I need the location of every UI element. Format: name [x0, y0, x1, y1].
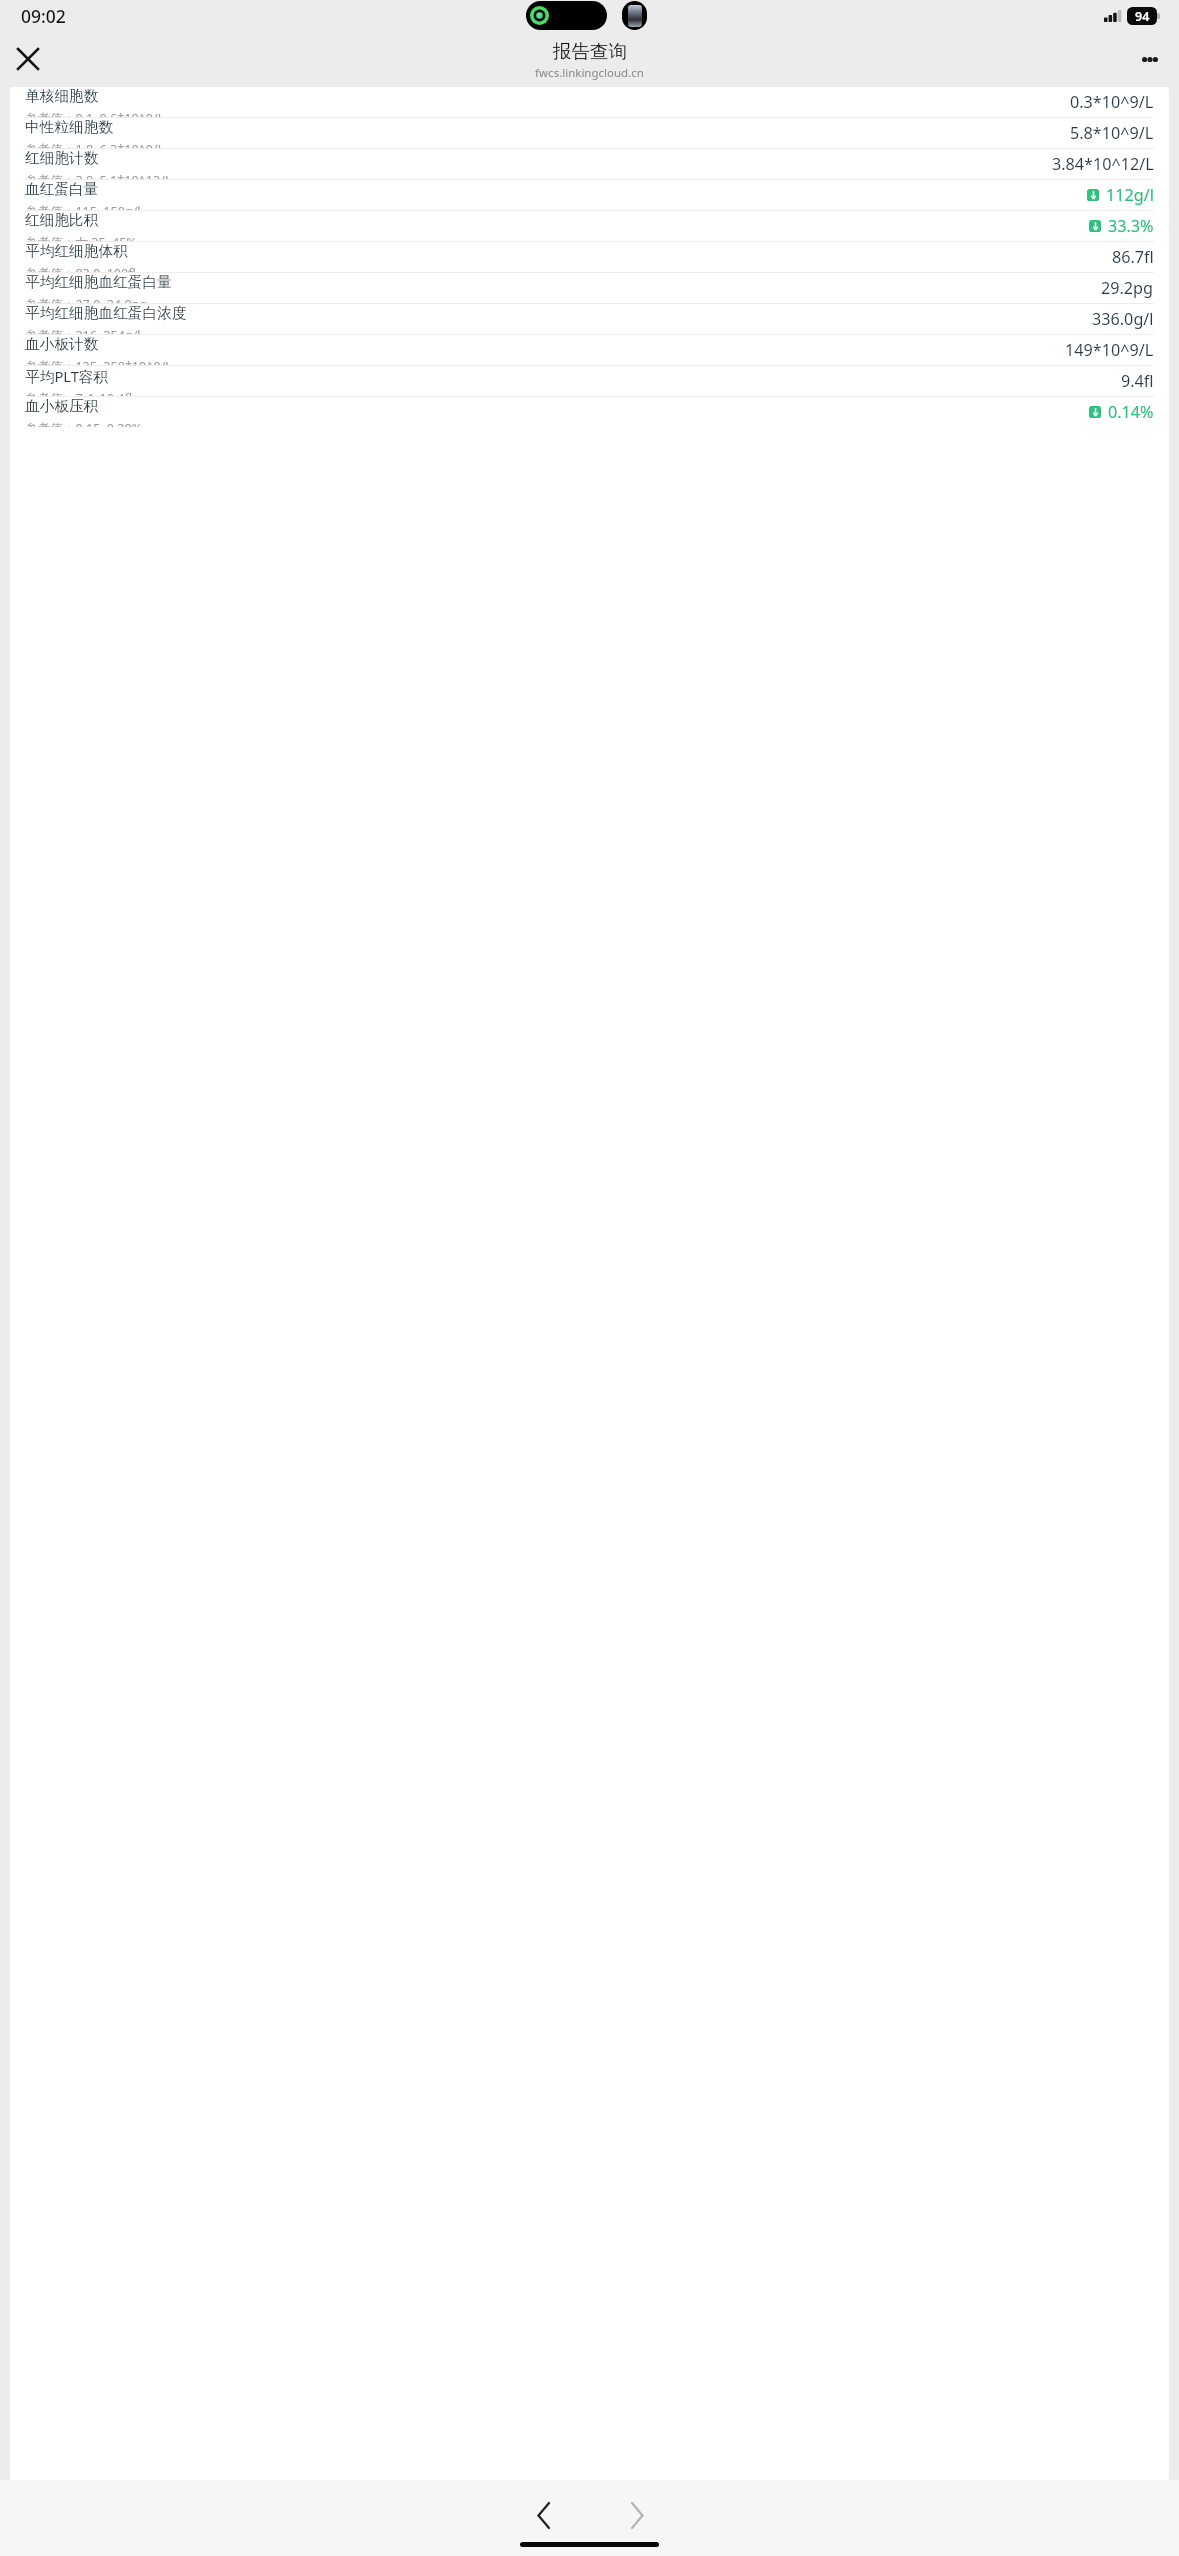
button[interactable]: 红细胞比积 — [10, 211, 1169, 241]
staticText: 86.7fl — [1112, 246, 1154, 268]
button[interactable]: Forward — [610, 2488, 664, 2542]
staticText: 94 — [1135, 8, 1150, 25]
staticText: 平均红细胞体积 — [25, 242, 128, 261]
button[interactable]: 血小板计数 — [10, 335, 1169, 365]
button[interactable]: 红细胞计数 — [10, 149, 1169, 179]
staticText: 9.4fl — [1121, 370, 1154, 392]
staticText: 336.0g/l — [1092, 308, 1154, 330]
button[interactable]: 血小板压积 — [10, 397, 1169, 427]
staticText: 参考值：115–150g/l — [25, 203, 141, 210]
staticText: 3.84*10^12/L — [1052, 153, 1154, 175]
staticText: 平均红细胞血红蛋白浓度 — [25, 304, 187, 323]
staticText: 参考值：0.15–0.30% — [25, 420, 143, 427]
button[interactable]: Close — [4, 35, 52, 83]
staticText: 参考值：27.0–34.0pg — [25, 296, 148, 303]
staticText: 29.2pg — [1101, 277, 1154, 299]
button[interactable]: 单核细胞数 — [10, 87, 1169, 117]
button[interactable]: 平均红细胞体积 — [10, 242, 1169, 272]
staticText: 参考值：7.4–10.4fl — [25, 390, 133, 396]
staticText: 中性粒细胞数 — [25, 118, 114, 137]
staticText: 09:02 — [21, 4, 66, 28]
staticText: 参考值：3.8–5.1*10^12/L — [25, 172, 172, 179]
staticText: 参考值：125–350*10^9/L — [25, 358, 172, 365]
staticText: 报告查询 — [553, 40, 627, 63]
staticText: 参考值：316–354g/l — [25, 327, 141, 334]
staticText: 红细胞比积 — [25, 211, 99, 230]
button[interactable]: 平均PLT容积 — [10, 366, 1169, 396]
button[interactable]: 中性粒细胞数 — [10, 118, 1169, 148]
button[interactable]: Back — [516, 2488, 570, 2542]
staticText: 血小板计数 — [25, 335, 99, 354]
staticText: 33.3% — [1108, 215, 1154, 237]
staticText: 参考值：82.0–100fl — [25, 265, 136, 272]
staticText: 5.8*10^9/L — [1070, 122, 1154, 144]
button[interactable]: More options — [1126, 35, 1174, 83]
staticText: 112g/l — [1106, 184, 1154, 206]
staticText: 参考值：女 35–45% — [25, 234, 137, 241]
staticText: 参考值：1.8–6.3*10^9/L — [25, 141, 165, 148]
staticText: 0.3*10^9/L — [1070, 91, 1154, 113]
staticText: fwcs.linkingcloud.cn — [535, 65, 644, 81]
staticText: 参考值：0.1–0.6*10^9/L — [25, 110, 165, 117]
button[interactable]: 平均红细胞血红蛋白量 — [10, 273, 1169, 303]
staticText: 0.14% — [1108, 401, 1154, 423]
button[interactable]: 平均红细胞血红蛋白浓度 — [10, 304, 1169, 334]
staticText: 单核细胞数 — [25, 87, 99, 106]
button[interactable]: 血红蛋白量 — [10, 180, 1169, 210]
staticText: 红细胞计数 — [25, 149, 99, 168]
staticText: 平均红细胞血红蛋白量 — [25, 273, 172, 292]
staticText: 血小板压积 — [25, 397, 99, 416]
staticText: 平均PLT容积 — [25, 366, 109, 386]
staticText: 149*10^9/L — [1065, 339, 1154, 361]
staticText: 血红蛋白量 — [25, 180, 99, 199]
